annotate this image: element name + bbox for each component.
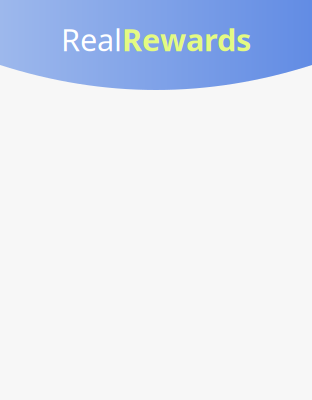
staticText: Rewards [122,19,251,60]
staticText: Real [61,19,122,60]
